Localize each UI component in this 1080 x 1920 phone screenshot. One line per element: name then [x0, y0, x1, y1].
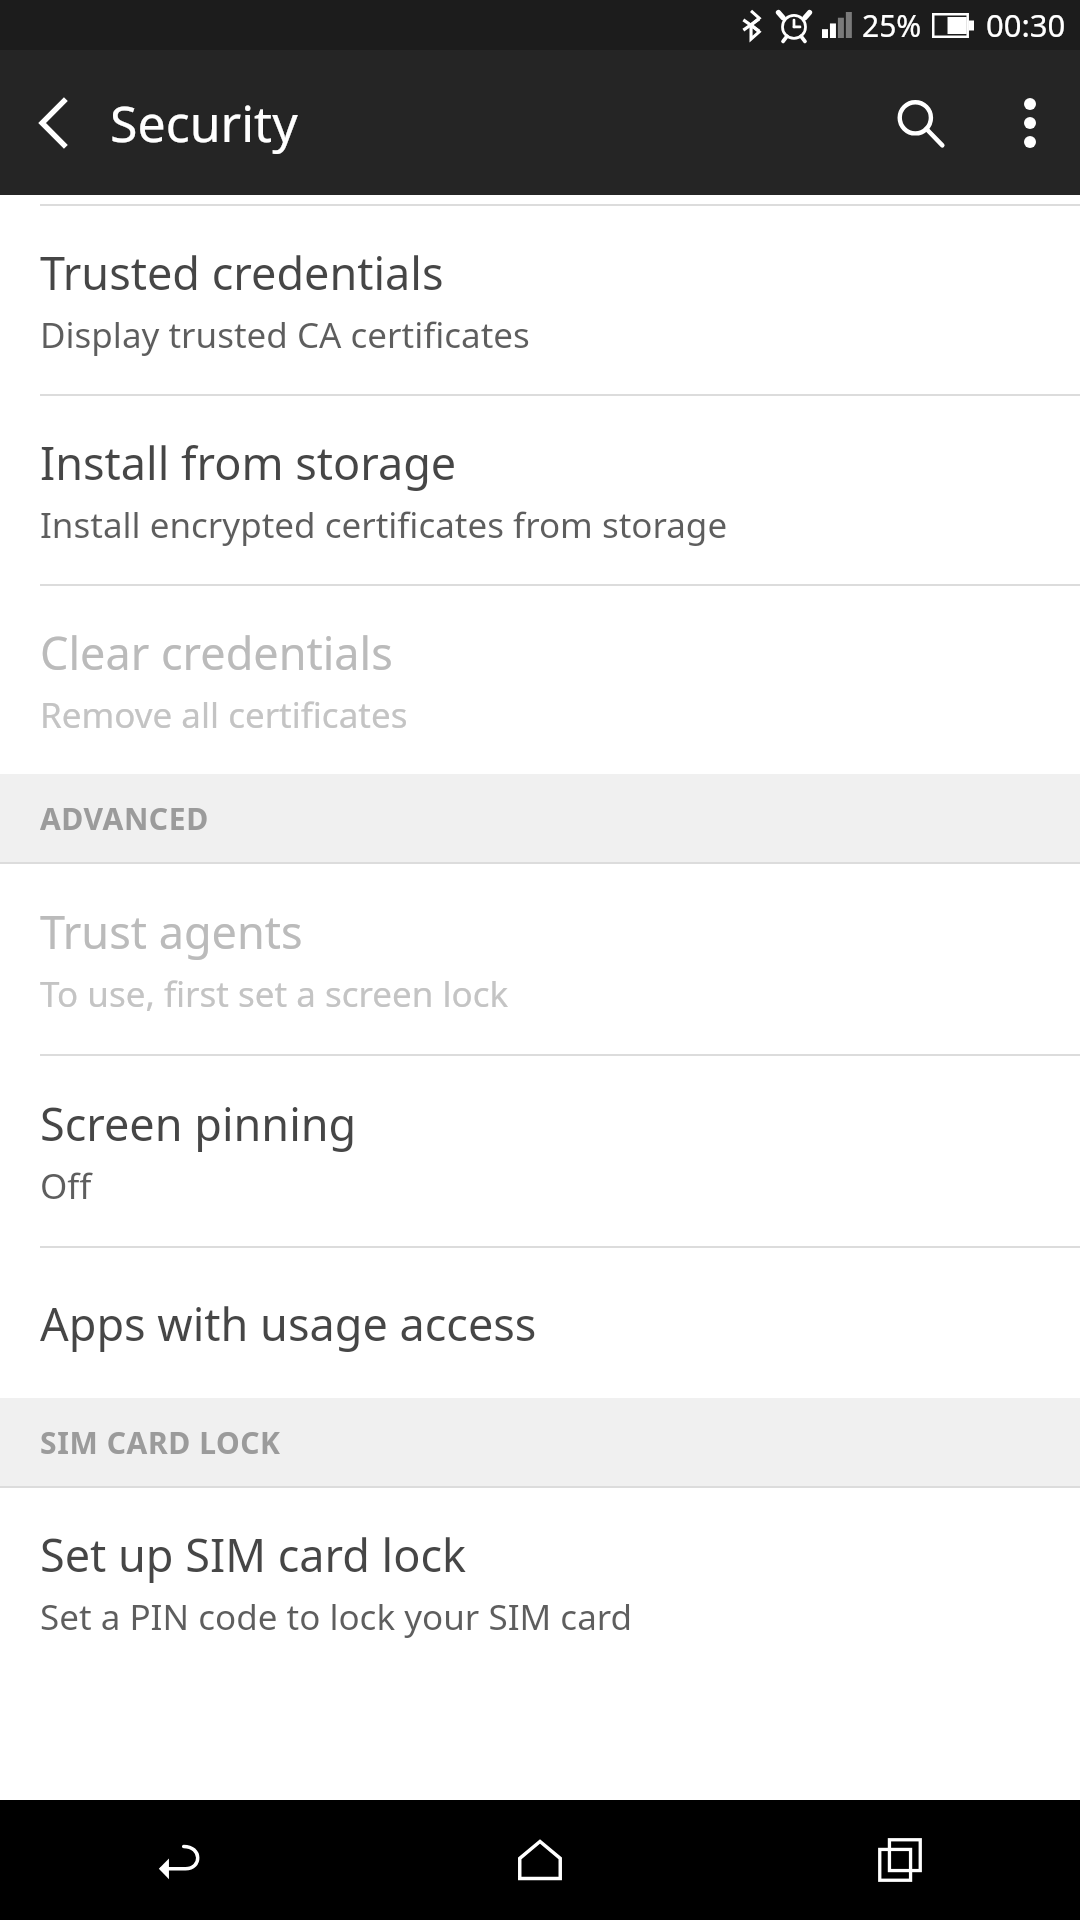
button[interactable]: Install from storage: [0, 396, 1080, 584]
button[interactable]: More options: [980, 50, 1080, 195]
button[interactable]: Back: [0, 1800, 360, 1920]
staticText: To use, first set a screen lock: [40, 970, 509, 1018]
staticText: Set a PIN code to lock your SIM card: [40, 1593, 633, 1641]
staticText: Security: [110, 89, 298, 157]
staticText: Screen pinning: [40, 1093, 357, 1154]
staticText: Install encrypted certificates from stor…: [40, 501, 728, 549]
staticText: SIM CARD LOCK: [40, 1422, 281, 1463]
staticText: Display trusted CA certificates: [40, 311, 530, 359]
staticText: ADVANCED: [40, 798, 209, 839]
staticText: 00:30: [986, 4, 1066, 46]
button[interactable]: Clear credentials: [0, 586, 1080, 774]
staticText: Trusted credentials: [40, 242, 444, 303]
staticText: Remove all certificates: [40, 691, 408, 739]
button[interactable]: Apps with usage access: [0, 1248, 1080, 1398]
staticText: Off: [40, 1162, 92, 1210]
staticText: Apps with usage access: [40, 1293, 537, 1354]
staticText: Trust agents: [40, 901, 303, 962]
button[interactable]: Recent apps: [720, 1800, 1080, 1920]
button[interactable]: Search: [860, 50, 980, 195]
button[interactable]: Home: [360, 1800, 720, 1920]
button[interactable]: Back: [0, 50, 110, 195]
button[interactable]: Trust agents: [0, 864, 1080, 1054]
button[interactable]: Screen pinning: [0, 1056, 1080, 1246]
staticText: Clear credentials: [40, 622, 393, 683]
staticText: Install from storage: [40, 432, 457, 493]
staticText: 25%: [862, 5, 922, 46]
button[interactable]: Trusted credentials: [0, 206, 1080, 394]
staticText: Set up SIM card lock: [40, 1524, 467, 1585]
button[interactable]: Set up SIM card lock: [0, 1488, 1080, 1676]
